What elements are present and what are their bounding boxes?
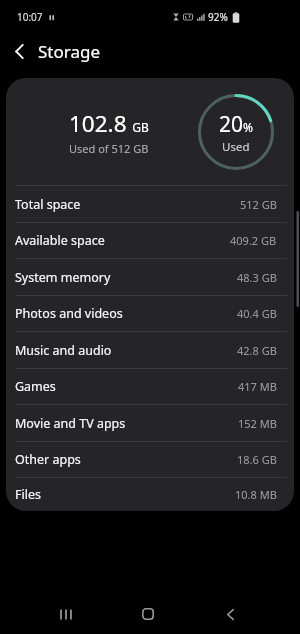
staticText: Used (222, 139, 250, 155)
staticText: Movie and TV apps (15, 415, 126, 432)
staticText: Available space (15, 232, 105, 249)
staticText: Games (15, 378, 56, 395)
staticText: Total space (15, 196, 81, 213)
button[interactable] (210, 594, 250, 634)
staticText: 92% (208, 10, 228, 24)
staticText: 102.8 GB (69, 108, 149, 139)
button[interactable]: Games (6, 369, 294, 404)
staticText: Music and audio (15, 342, 112, 359)
staticText: 417 MB (238, 379, 277, 394)
staticText: 10.8 MB (235, 487, 277, 502)
staticText: 42.8 GB (237, 343, 277, 358)
button[interactable] (0, 27, 38, 75)
staticText: 40.4 GB (237, 306, 277, 321)
button[interactable]: Files (6, 478, 294, 511)
button[interactable]: Movie and TV apps (6, 405, 294, 441)
staticText: Photos and videos (15, 305, 123, 322)
button[interactable]: Available space (6, 223, 294, 258)
staticText: 10:07 (17, 10, 43, 24)
staticText: System memory (15, 269, 111, 286)
staticText: Storage (38, 40, 101, 63)
staticText: 20% (219, 110, 253, 139)
button[interactable]: System memory (6, 259, 294, 295)
staticText: 152 MB (238, 416, 277, 431)
staticText: 409.2 GB (230, 233, 277, 248)
staticText: 48.3 GB (237, 270, 277, 285)
staticText: Used of 512 GB (69, 141, 149, 156)
staticText: Other apps (15, 451, 81, 468)
button[interactable]: Music and audio (6, 332, 294, 368)
staticText: Files (15, 486, 41, 503)
button[interactable] (128, 594, 168, 634)
staticText: 18.6 GB (237, 452, 277, 467)
button[interactable]: Photos and videos (6, 296, 294, 331)
button[interactable]: Other apps (6, 442, 294, 477)
staticText: 512 GB (240, 197, 277, 212)
button[interactable]: Total space (6, 186, 294, 222)
button[interactable] (46, 594, 86, 634)
